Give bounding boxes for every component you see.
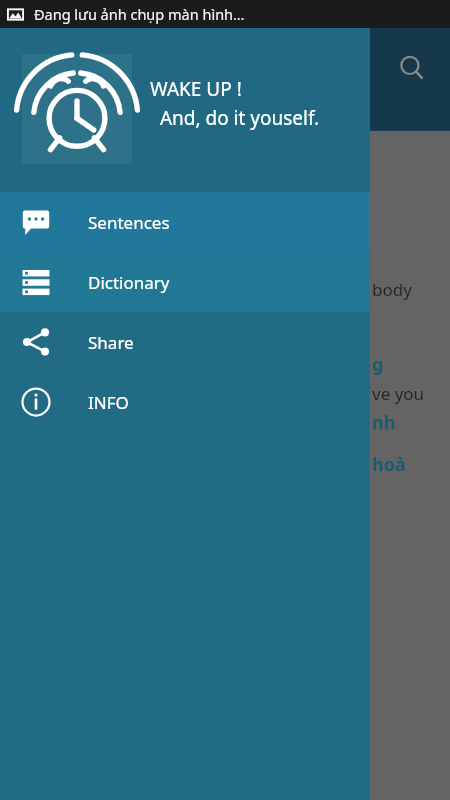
staticText: And, do it youself. bbox=[150, 105, 320, 131]
staticText: Sentences bbox=[88, 211, 170, 234]
staticText: Dictionary bbox=[88, 271, 170, 294]
button[interactable]: Sentences bbox=[0, 192, 370, 252]
staticText: ve you bbox=[372, 382, 425, 405]
staticText: INFO bbox=[88, 391, 129, 414]
staticText: body bbox=[372, 278, 412, 301]
staticText: hoà bbox=[372, 452, 406, 477]
staticText: Share bbox=[88, 331, 134, 354]
staticText: WAKE UP ! bbox=[150, 76, 242, 102]
staticText: nh bbox=[372, 410, 396, 435]
staticText: Đang lưu ảnh chụp màn hình… bbox=[34, 4, 245, 24]
button[interactable]: Dictionary bbox=[0, 252, 370, 312]
button[interactable]: INFO bbox=[0, 372, 370, 432]
button[interactable]: Search bbox=[390, 46, 434, 90]
button[interactable]: Share bbox=[0, 312, 370, 372]
staticText: g bbox=[372, 352, 384, 377]
